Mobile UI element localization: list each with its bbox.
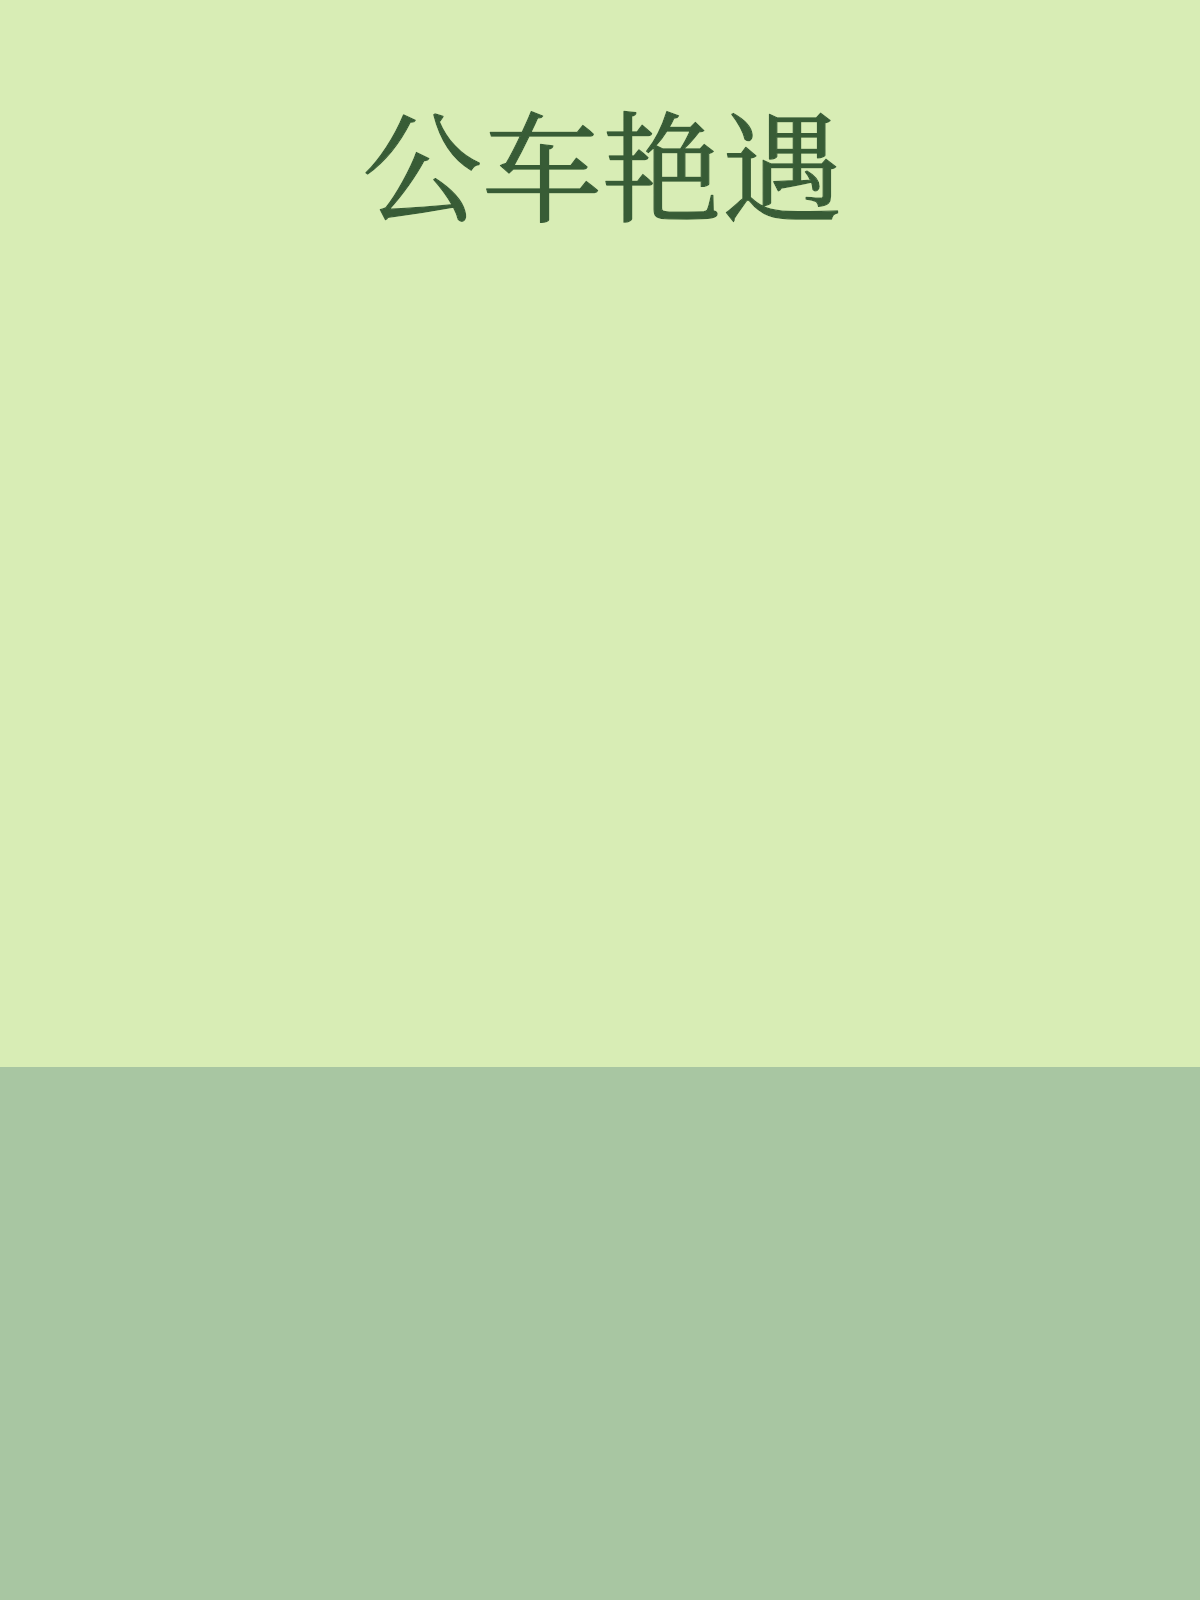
button[interactable]: 公车艳遇 [0, 0, 1200, 260]
staticText: 公车艳遇 [2, 75, 1200, 247]
staticText: 公车艳遇 [2, 75, 1200, 247]
